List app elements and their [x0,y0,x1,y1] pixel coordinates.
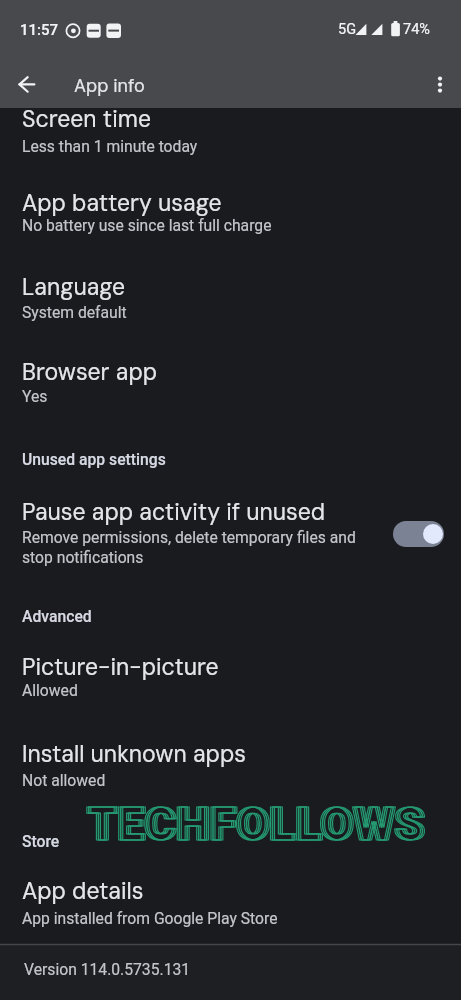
staticText: Screen time [22,104,151,134]
staticText: TECHFOLLOWS [86,797,424,851]
button[interactable] [420,64,460,104]
staticText: TECHFOLLOWS [90,797,428,851]
staticText: Language [22,272,126,302]
button[interactable] [0,485,461,585]
staticText: Pause app activity if unused [22,497,326,527]
staticText: Yes [22,387,48,405]
button[interactable] [393,521,444,547]
staticText: Picture-in-picture [22,652,219,682]
button[interactable] [0,865,461,949]
button[interactable] [0,176,461,260]
button[interactable] [0,260,461,344]
staticText: No battery use since last full charge [22,216,272,234]
staticText: Not allowed [22,771,106,789]
staticText: Store [22,832,60,850]
button[interactable] [0,108,461,176]
staticText: Version 114.0.5735.131 [24,960,191,978]
staticText: Install unknown apps [22,739,246,769]
staticText: Advanced [22,607,92,625]
staticText: stop notifications [22,548,144,566]
staticText: TECHFOLLOWS [88,797,426,851]
staticText: App installed from Google Play Store [22,909,278,927]
button[interactable] [8,64,50,106]
staticText: Browser app [22,357,158,387]
button[interactable] [0,640,461,724]
staticText: 5G [338,21,357,38]
staticText: 74% [403,21,430,38]
staticText: App details [22,876,144,906]
staticText: App info [74,74,145,97]
staticText: Unused app settings [22,450,166,468]
button[interactable] [0,727,461,811]
staticText: Remove permissions, delete temporary fil… [22,528,356,546]
staticText: Less than 1 minute today [22,137,198,155]
staticText: Allowed [22,681,78,699]
staticText: App battery usage [22,188,222,218]
staticText: System default [22,303,127,321]
button[interactable] [0,345,461,429]
staticText: 11:57 [20,21,59,39]
